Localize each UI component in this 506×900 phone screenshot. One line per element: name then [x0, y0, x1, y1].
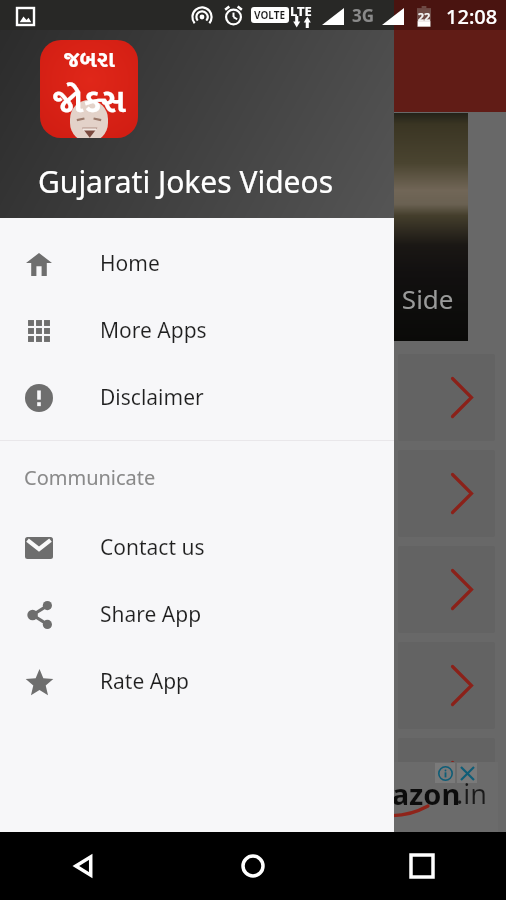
staticText: Gujarati Jokes Videos	[38, 161, 334, 202]
staticText: Share App	[100, 600, 202, 629]
staticText: More Apps	[100, 316, 207, 345]
button[interactable]	[398, 450, 495, 537]
button[interactable]: Contact us	[0, 514, 394, 581]
staticText: જોક્સ	[53, 75, 125, 130]
staticText: Disclaimer	[100, 383, 204, 412]
staticText: amazon	[346, 774, 461, 813]
button[interactable]: Recent apps	[337, 832, 506, 900]
staticText: Contact us	[100, 533, 205, 562]
staticText: Laughing Side	[280, 281, 454, 316]
button[interactable]: More Apps	[0, 297, 394, 364]
button[interactable]: amazon	[4, 762, 498, 832]
staticText: 3G	[352, 4, 375, 27]
button[interactable]: Home	[168, 832, 337, 900]
staticText: LTE	[290, 2, 312, 20]
staticText: જબરા	[64, 41, 115, 79]
staticText: 12:08	[446, 3, 498, 30]
button[interactable]: Disclaimer	[0, 364, 394, 431]
button[interactable]: Rate App	[0, 648, 394, 715]
button[interactable]: Share App	[0, 581, 394, 648]
button[interactable]	[398, 546, 495, 633]
button[interactable]: Laughing Side	[0, 113, 468, 341]
staticText: Home	[100, 249, 160, 278]
staticText: VOLTE	[254, 8, 286, 22]
staticText: Rate App	[100, 667, 189, 696]
button[interactable]	[398, 354, 495, 441]
button[interactable]: Home	[0, 230, 394, 297]
button[interactable]	[398, 738, 495, 825]
staticText: 22	[417, 9, 431, 24]
button[interactable]: Back	[0, 832, 168, 900]
button[interactable]	[398, 642, 495, 729]
staticText: Communicate	[24, 464, 156, 491]
staticText: .in	[456, 775, 487, 812]
button[interactable]	[398, 834, 495, 900]
